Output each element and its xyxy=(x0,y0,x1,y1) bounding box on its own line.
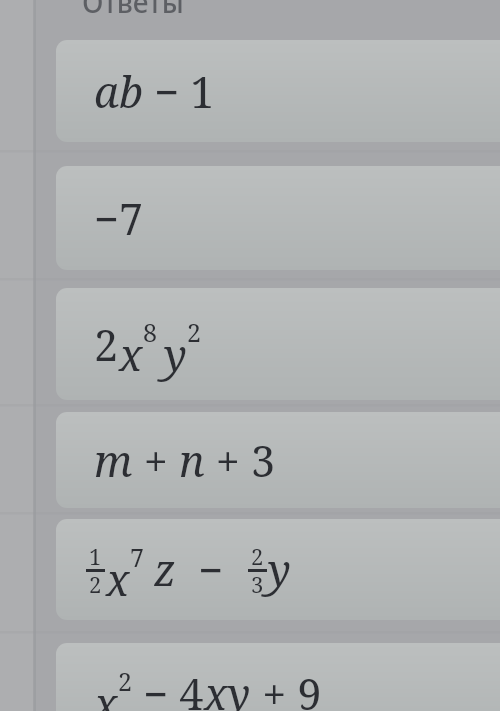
staticText: xy xyxy=(204,664,251,711)
staticText: m + n + 3 xyxy=(94,431,276,490)
staticText: + 9 xyxy=(251,664,322,711)
staticText: y xyxy=(164,325,187,384)
button[interactable]: 1 xyxy=(56,519,500,620)
staticText: 2 xyxy=(251,541,264,571)
button[interactable]: m + n + 3 xyxy=(56,412,500,508)
staticText: ab − 1 xyxy=(94,62,215,121)
staticText: 7 xyxy=(130,540,144,574)
staticText: 8 xyxy=(143,315,157,349)
staticText: 3 xyxy=(251,569,264,599)
staticText: x xyxy=(94,674,118,711)
staticText: Ответы xyxy=(82,0,184,21)
staticText: −7 xyxy=(94,189,143,248)
staticText: x xyxy=(106,550,130,609)
staticText: 2 xyxy=(89,569,102,599)
staticText: 2 xyxy=(187,315,201,349)
button[interactable]: ab − 1 xyxy=(56,40,500,142)
button[interactable]: x xyxy=(56,643,500,711)
button[interactable]: 2 xyxy=(56,288,500,400)
staticText: 2 xyxy=(94,315,119,374)
staticText: x xyxy=(119,325,143,384)
staticText: 1 xyxy=(89,541,102,571)
staticText: y xyxy=(268,540,291,599)
staticText: z xyxy=(154,540,176,599)
staticText: 2 xyxy=(118,664,132,698)
staticText: − xyxy=(176,540,246,599)
staticText: − 4 xyxy=(132,664,204,711)
button[interactable]: −7 xyxy=(56,166,500,270)
